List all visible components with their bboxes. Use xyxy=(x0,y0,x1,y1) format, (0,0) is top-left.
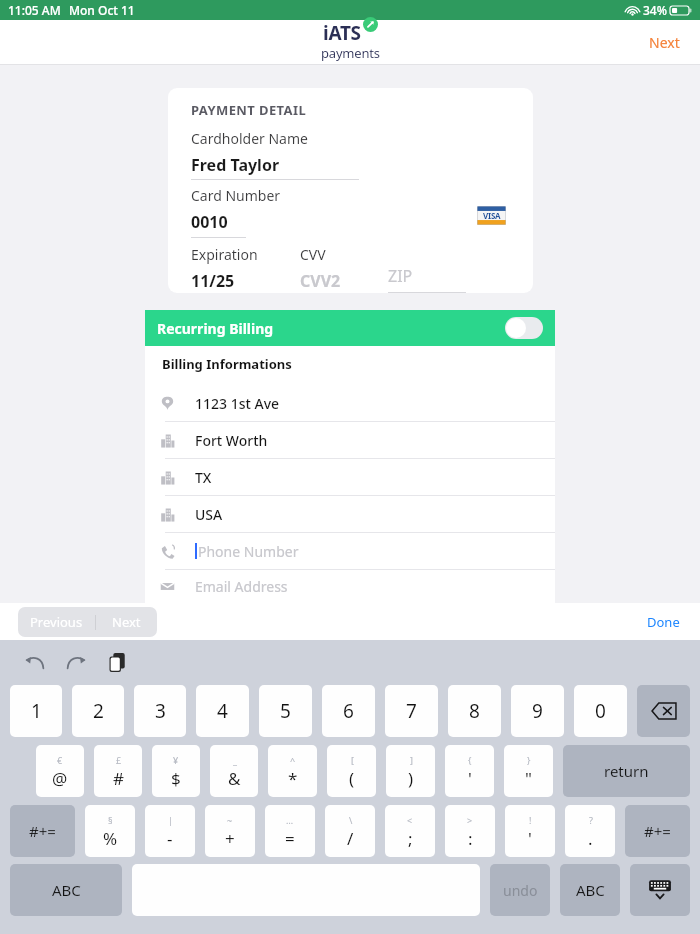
staticText: 6 xyxy=(343,698,354,724)
staticText: Fred Taylor xyxy=(191,154,280,176)
button[interactable]: 3 xyxy=(134,685,186,737)
button[interactable]: … xyxy=(265,805,315,857)
button[interactable]: Previous xyxy=(18,607,95,637)
staticText: Done xyxy=(647,613,680,631)
staticText: § xyxy=(108,814,113,826)
staticText: 0 xyxy=(595,698,606,724)
button[interactable]: 2 xyxy=(72,685,124,737)
staticText: & xyxy=(228,767,241,790)
button[interactable]: § xyxy=(85,805,135,857)
button[interactable]: ? xyxy=(565,805,615,857)
staticText: . xyxy=(588,827,593,850)
button[interactable]: Recurring Billing xyxy=(145,310,555,346)
staticText: CVV xyxy=(300,245,326,264)
button[interactable]: _ xyxy=(210,745,258,797)
staticText: ) xyxy=(408,767,414,790)
staticText: € xyxy=(57,754,63,766)
staticText: Mon Oct 11 xyxy=(69,2,135,18)
button[interactable]: Next xyxy=(96,607,157,637)
button[interactable]: Hide keyboard xyxy=(630,864,690,916)
staticText: = xyxy=(285,827,295,850)
button[interactable]: TX xyxy=(145,459,555,496)
staticText: VISA xyxy=(483,210,501,221)
staticText: 0010 xyxy=(191,211,228,233)
staticText: < xyxy=(407,814,413,826)
button[interactable]: USA xyxy=(145,496,555,533)
staticText: / xyxy=(347,827,354,850)
button[interactable]: 7 xyxy=(385,685,438,737)
staticText: ? xyxy=(589,814,593,826)
button[interactable]: ~ xyxy=(205,805,255,857)
button[interactable]: #+= xyxy=(10,805,75,857)
button[interactable]: Email Address xyxy=(145,570,555,603)
button[interactable]: return xyxy=(563,745,690,797)
staticText: Next xyxy=(112,613,141,631)
staticText: ' xyxy=(468,767,472,790)
button[interactable]: 5 xyxy=(259,685,312,737)
button[interactable]: > xyxy=(445,805,495,857)
button[interactable]: Phone Number xyxy=(145,533,555,570)
button[interactable]: ] xyxy=(386,745,435,797)
staticText: ] xyxy=(410,754,413,766)
button[interactable]: 8 xyxy=(448,685,501,737)
staticText: 11/25 xyxy=(191,270,235,292)
button[interactable]: 1 xyxy=(10,685,62,737)
button[interactable]: ! xyxy=(505,805,555,857)
button[interactable]: ABC xyxy=(10,864,122,916)
button[interactable]: € xyxy=(36,745,84,797)
staticText: PAYMENT DETAIL xyxy=(191,101,307,119)
staticText: * xyxy=(288,767,298,790)
staticText: ; xyxy=(408,827,413,850)
staticText: ¥ xyxy=(173,754,179,766)
button[interactable]: ^ xyxy=(268,745,317,797)
button[interactable]: 9 xyxy=(511,685,564,737)
button[interactable]: £ xyxy=(94,745,142,797)
button[interactable]: { xyxy=(445,745,494,797)
button[interactable]: Fort Worth xyxy=(145,422,555,459)
button[interactable]: ZIP xyxy=(388,265,466,293)
staticText: undo xyxy=(503,881,538,900)
button[interactable]: undo xyxy=(490,864,550,916)
button[interactable]: Next xyxy=(643,27,686,58)
staticText: 7 xyxy=(406,698,417,724)
staticText: Recurring Billing xyxy=(157,319,274,338)
button[interactable]: 6 xyxy=(322,685,375,737)
button[interactable]: \ xyxy=(325,805,375,857)
button[interactable]: Recurring billing toggle xyxy=(505,317,543,339)
button[interactable]: Done xyxy=(641,607,686,637)
button[interactable]: 1123 1st Ave xyxy=(145,385,555,422)
staticText: ABC xyxy=(576,880,605,900)
staticText: } xyxy=(527,754,531,766)
button[interactable]: < xyxy=(385,805,435,857)
staticText: 34% xyxy=(643,2,667,18)
button[interactable]: Paste xyxy=(102,647,132,677)
button[interactable]: | xyxy=(145,805,195,857)
staticText: 9 xyxy=(532,698,543,724)
staticText: _ xyxy=(233,754,237,766)
staticText: Phone Number xyxy=(198,542,299,561)
staticText: 1123 1st Ave xyxy=(195,394,280,413)
button[interactable]: Backspace xyxy=(637,685,690,737)
staticText: 2 xyxy=(93,698,104,724)
button[interactable]: ¥ xyxy=(152,745,200,797)
staticText: Email Address xyxy=(195,577,288,596)
button[interactable]: 0 xyxy=(574,685,627,737)
staticText: 3 xyxy=(155,698,166,724)
staticText: £ xyxy=(116,754,122,766)
staticText: Cardholder Name xyxy=(191,129,308,148)
button[interactable]: Undo xyxy=(20,647,50,677)
button[interactable]: Redo xyxy=(61,647,91,677)
button[interactable]: [ xyxy=(327,745,376,797)
staticText: : xyxy=(468,827,473,850)
button[interactable]: 4 xyxy=(196,685,249,737)
button[interactable]: } xyxy=(504,745,553,797)
staticText: Fort Worth xyxy=(195,431,268,450)
button[interactable]: ABC xyxy=(560,864,620,916)
staticText: @ xyxy=(52,767,68,790)
staticText: return xyxy=(604,761,649,781)
staticText: Previous xyxy=(30,613,83,631)
staticText: { xyxy=(468,754,472,766)
button[interactable]: #+= xyxy=(625,805,690,857)
button[interactable]: CVV xyxy=(300,245,352,293)
